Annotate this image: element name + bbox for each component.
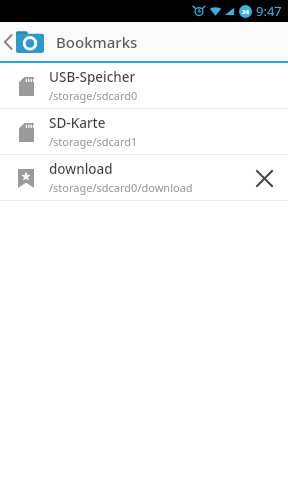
staticText: /storage/sdcard0/download: [49, 180, 193, 195]
button[interactable]: Up: [0, 22, 288, 61]
staticText: /storage/sdcard1: [49, 134, 138, 149]
staticText: 24: [242, 8, 249, 16]
staticText: Bookmarks: [56, 32, 138, 52]
staticText: SD-Karte: [49, 114, 106, 132]
staticText: 9:47: [256, 2, 282, 20]
button[interactable]: Remove bookmark: [242, 156, 286, 200]
staticText: download: [49, 160, 113, 178]
staticText: USB-Speicher: [49, 68, 136, 86]
button[interactable]: USB-Speicher: [0, 63, 288, 108]
staticText: /storage/sdcard0: [49, 88, 138, 103]
button[interactable]: download: [0, 155, 288, 200]
button[interactable]: SD-Karte: [0, 109, 288, 154]
